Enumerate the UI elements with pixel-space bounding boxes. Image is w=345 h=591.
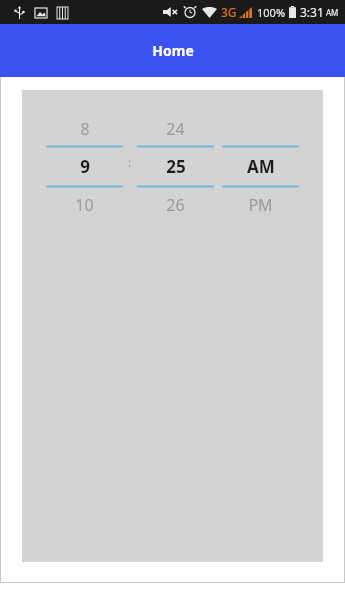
staticText: AM [326,7,339,18]
staticText: 24 [166,118,185,140]
button[interactable]: AM or PM [222,113,299,222]
staticText: 8 [80,118,90,140]
button[interactable]: Hour [46,113,123,222]
staticText: 3:31 [300,4,324,20]
staticText: 10 [75,194,94,216]
staticText: 25 [166,155,186,178]
staticText: Home [152,41,194,60]
button[interactable]: Minute [137,113,214,222]
staticText: 9 [80,155,90,178]
staticText: 3G [221,4,237,20]
staticText: 100% [257,5,286,20]
staticText: PM [248,194,273,216]
staticText: AM [247,155,275,178]
staticText: 26 [166,194,185,216]
staticText: : [128,153,132,171]
